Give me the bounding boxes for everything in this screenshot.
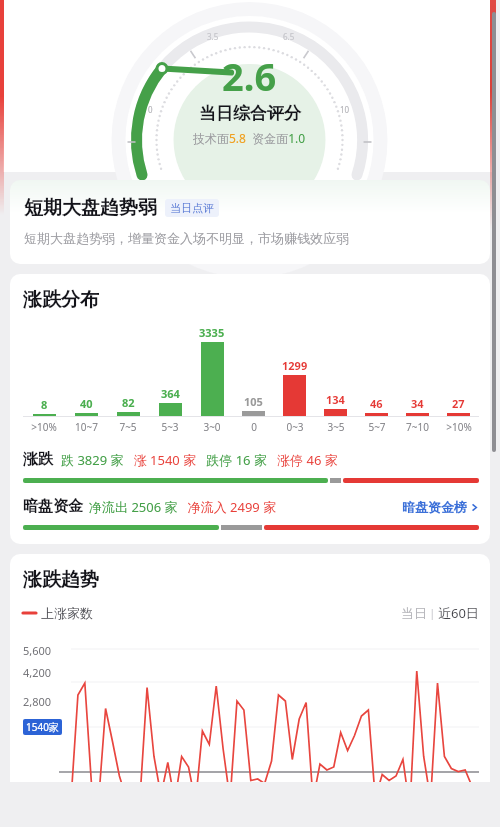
staticText: 34 (411, 396, 424, 411)
staticText: 105 (244, 394, 263, 409)
staticText: 上涨家数 (41, 605, 93, 621)
staticText: 暗盘资金 (23, 497, 83, 516)
staticText: 技术面5.8 资金面1.0 (193, 130, 306, 146)
staticText: 8 (41, 397, 48, 412)
button[interactable]: 当日 (401, 604, 479, 622)
staticText: 跌 3829 家 涨 1540 家 跌停 16 家 涨停 46 家 (61, 451, 338, 469)
staticText: 3.5 (207, 31, 219, 42)
staticText: 2.6 (222, 50, 277, 102)
staticText: 当日点评 (170, 201, 214, 215)
staticText: 46 (370, 396, 383, 411)
staticText: 3~5 (327, 420, 345, 434)
staticText: >10% (31, 420, 57, 434)
staticText: 涨跌趋势 (23, 568, 99, 592)
button[interactable]: 涨跌 (23, 450, 479, 469)
staticText: 0 (251, 420, 257, 434)
staticText: 当日综合评分 (199, 103, 301, 124)
staticText: 40 (80, 396, 93, 411)
staticText: 5~3 (161, 420, 179, 434)
staticText: 82 (122, 395, 135, 410)
staticText: >10% (446, 420, 472, 434)
button[interactable]: 短期大盘趋势弱 (10, 180, 490, 264)
staticText: 涨跌 (23, 450, 53, 469)
staticText: 近60日 (438, 604, 479, 622)
staticText: 364 (161, 386, 180, 401)
staticText: 1540家 (26, 720, 59, 734)
staticText: 134 (326, 392, 345, 407)
staticText: | (427, 606, 438, 620)
other: 暗盘资金榜 (470, 503, 479, 512)
staticText: 1299 (282, 358, 308, 373)
staticText: 3~0 (203, 420, 221, 434)
staticText: 10 (340, 104, 350, 115)
staticText: 6.5 (283, 31, 295, 42)
staticText: 5,600 (23, 643, 52, 658)
staticText: 净流出 2506 家 净流入 2499 家 (89, 498, 277, 516)
staticText: 0~3 (286, 420, 304, 434)
button[interactable]: 0 (3, 0, 496, 172)
staticText: 短期大盘趋势弱，增量资金入场不明显，市场赚钱效应弱 (24, 230, 349, 246)
button[interactable]: 暗盘资金榜 (402, 499, 479, 515)
staticText: 10~7 (75, 420, 98, 434)
staticText: 2,800 (23, 694, 52, 709)
staticText: 5~7 (368, 420, 386, 434)
staticText: 27 (452, 396, 465, 411)
staticText: 7~10 (406, 420, 429, 434)
button[interactable]: 暗盘资金 (23, 497, 479, 516)
staticText: 7~5 (119, 420, 137, 434)
staticText: 短期大盘趋势弱 (24, 196, 157, 220)
staticText: 暗盘资金榜 (402, 499, 467, 515)
staticText: 当日 (401, 605, 427, 621)
staticText: 3335 (199, 325, 225, 340)
staticText: 0 (148, 104, 153, 115)
staticText: 涨跌分布 (23, 288, 99, 312)
staticText: 4,200 (23, 665, 52, 680)
